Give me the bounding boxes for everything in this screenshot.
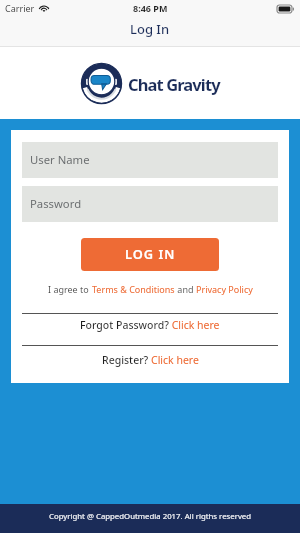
button[interactable]: Terms & Conditions	[92, 283, 175, 295]
staticText: Log In	[130, 20, 170, 38]
staticText: Chat Gravity	[128, 73, 220, 95]
staticText: and	[175, 283, 196, 295]
other: Chat Gravity logo	[81, 63, 122, 104]
staticText: User Name	[30, 152, 90, 167]
button[interactable]: Password	[22, 186, 278, 222]
staticText: 8:46 PM	[133, 2, 168, 14]
staticText: Forgot Password? Click here	[80, 318, 220, 332]
button[interactable]: Forgot Password? Click here	[11, 314, 289, 345]
staticText: Copyright @ CappedOutmedia 2017. All rig…	[49, 511, 252, 522]
staticText: Password	[30, 196, 82, 211]
staticText: I agree to	[48, 283, 92, 295]
staticText: Register? Click here	[102, 353, 199, 367]
staticText: Carrier	[5, 2, 35, 14]
button[interactable]: Register? Click here	[11, 346, 289, 383]
button[interactable]: Privacy Policy	[196, 283, 253, 295]
button[interactable]: User Name	[22, 142, 278, 178]
staticText: LOG IN	[125, 245, 176, 262]
button[interactable]: LOG IN	[81, 238, 219, 271]
